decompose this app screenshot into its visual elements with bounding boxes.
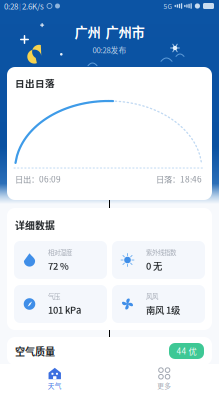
staticText: 5G xyxy=(164,1,173,11)
staticText: 相对湿度 xyxy=(48,248,72,257)
staticText: 空气质量 xyxy=(15,344,55,358)
button[interactable]: 相对湿度 xyxy=(14,241,107,279)
button[interactable]: 空气质量 xyxy=(7,337,212,365)
staticText: 南风 1级 xyxy=(146,303,180,316)
button[interactable]: 天气 xyxy=(0,364,109,394)
staticText: 广州 xyxy=(74,22,100,41)
staticText: 更多 xyxy=(157,381,171,390)
staticText: 0 无 xyxy=(146,259,162,272)
staticText: 天气 xyxy=(48,381,62,390)
button[interactable]: 更多 xyxy=(109,364,219,394)
staticText: 详细数据 xyxy=(15,218,55,232)
staticText: 72 % xyxy=(48,259,69,272)
staticText: 日落：18:46 xyxy=(156,173,202,185)
staticText: 0:28 xyxy=(4,0,18,12)
staticText: 风风 xyxy=(146,292,158,301)
staticText: 00:28发布 xyxy=(92,44,126,55)
button[interactable]: 紫外线指数 xyxy=(112,241,205,279)
button[interactable]: 气压 xyxy=(14,285,107,323)
staticText: 日出日落 xyxy=(15,76,55,90)
staticText: 紫外线指数 xyxy=(146,248,176,257)
button[interactable]: 风风 xyxy=(112,285,205,323)
staticText: | xyxy=(18,1,22,11)
staticText: 2.6K/s xyxy=(22,0,44,12)
staticText: 气压 xyxy=(48,292,60,301)
staticText: 101 kPa xyxy=(48,303,81,316)
staticText: 44 优 xyxy=(176,345,196,357)
staticText: 日出：06:09 xyxy=(15,173,61,185)
staticText: 广州市 xyxy=(105,22,144,41)
